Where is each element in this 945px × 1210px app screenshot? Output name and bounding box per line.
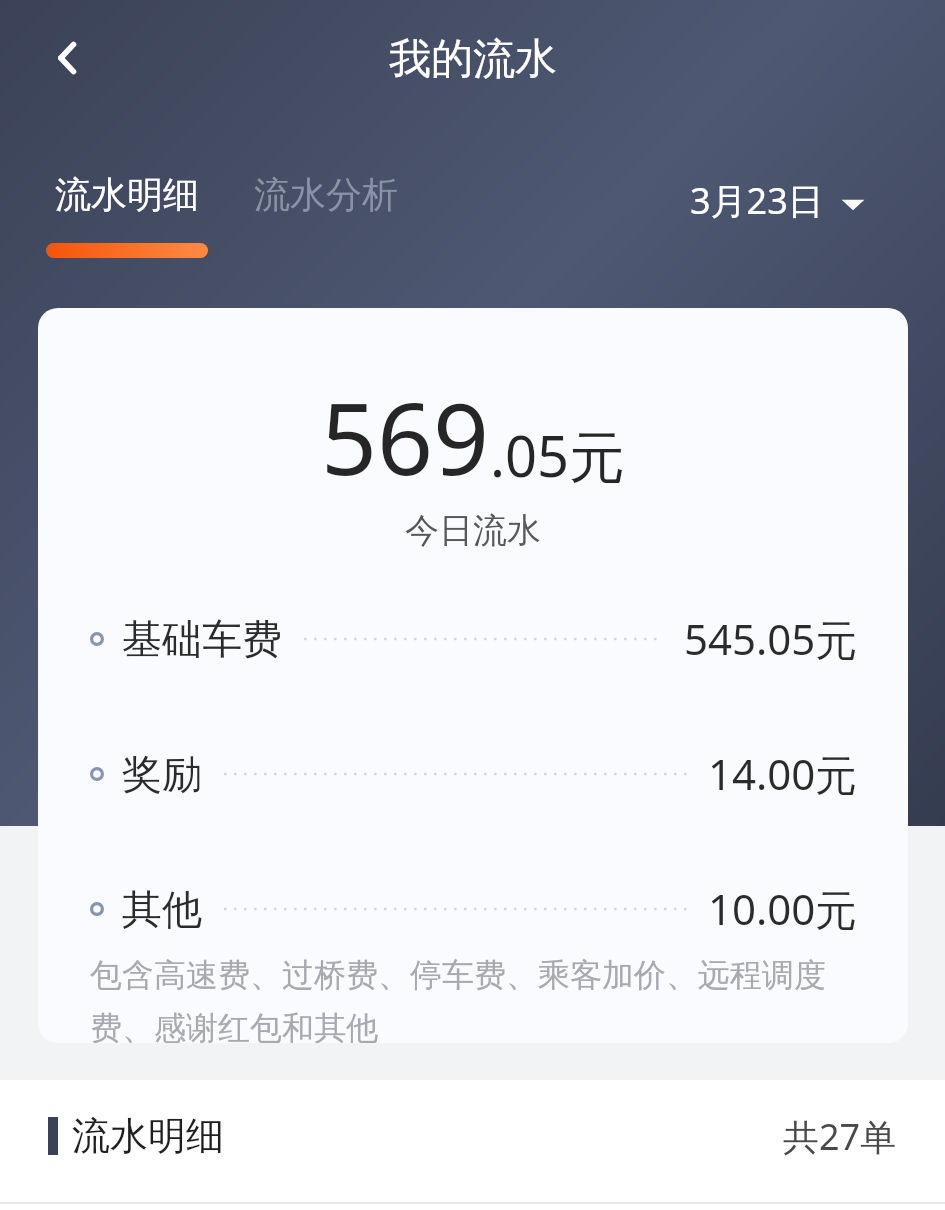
staticText: 14.00元 [708,745,858,802]
button[interactable]: 流水分析 [254,172,398,217]
staticText: 其他 [122,884,202,934]
button[interactable]: Back [28,18,108,98]
staticText: 包含高速费、过桥费、停车费、乘客加价、远程调度费、感谢红包和其他 [90,955,858,1043]
staticText: 3月23日 [690,176,824,225]
staticText: 流水明细 [72,1112,224,1160]
staticText: 流水明细 [55,172,199,217]
staticText: 今日流水 [405,509,541,552]
staticText: 10.00元 [708,880,858,937]
staticText: 我的流水 [389,33,557,86]
button[interactable]: 奖励 [38,745,908,802]
button[interactable]: 3月23日 [690,176,866,225]
staticText: 共27单 [783,1112,897,1161]
button[interactable]: 流水明细 [0,1080,945,1192]
staticText: 奖励 [122,749,202,799]
button[interactable]: 基础车费 [38,610,908,667]
staticText: 流水分析 [254,172,398,217]
staticText: 569 [321,370,490,503]
button[interactable]: 流水明细 [46,172,208,258]
staticText: .05元 [490,417,626,493]
staticText: 基础车费 [122,614,282,664]
button[interactable]: 其他 [38,880,908,937]
staticText: 545.05元 [684,610,858,667]
